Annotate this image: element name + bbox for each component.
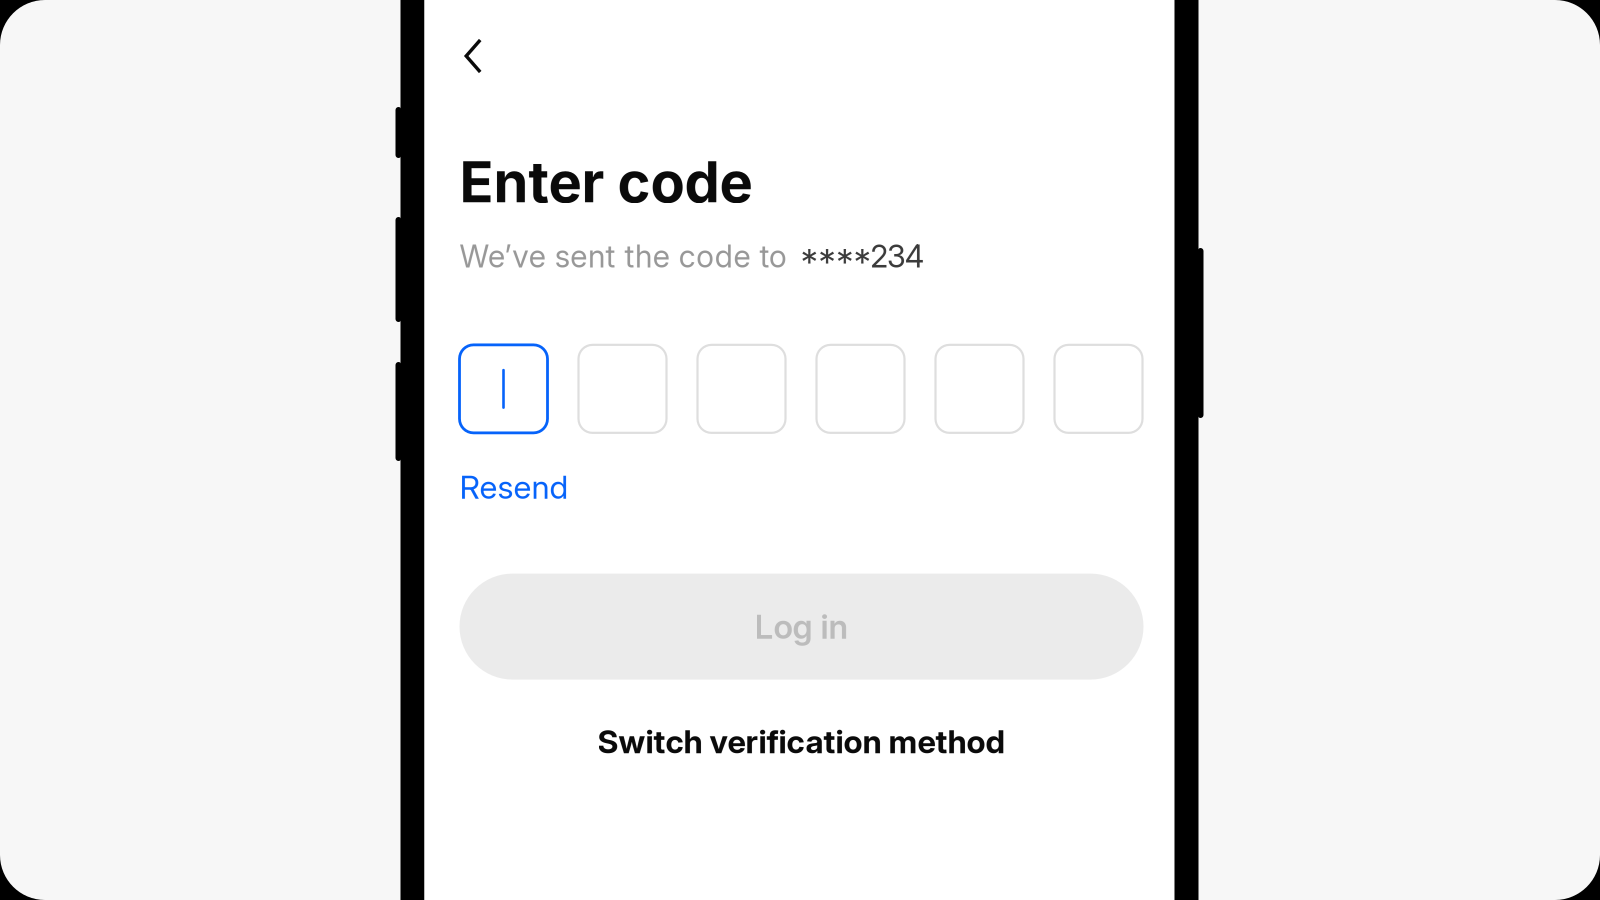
button[interactable]: Digit 5 xyxy=(935,345,1023,433)
button[interactable]: Back xyxy=(464,26,516,86)
staticText: Resend xyxy=(459,468,568,507)
button[interactable]: Digit 1 xyxy=(459,345,547,433)
button[interactable]: Log in xyxy=(459,574,1143,680)
staticText: ****234 xyxy=(799,238,924,275)
staticText: Switch verification method xyxy=(597,722,1005,761)
button[interactable]: Digit 2 xyxy=(578,345,666,433)
button[interactable]: Digit 4 xyxy=(816,345,904,433)
staticText: Log in xyxy=(754,606,848,647)
staticText: We’ve sent the code to xyxy=(459,238,787,275)
button[interactable]: Digit 3 xyxy=(697,345,785,433)
button[interactable]: Resend xyxy=(459,468,568,507)
button[interactable]: Switch verification method xyxy=(459,728,1143,756)
button[interactable]: Digit 6 xyxy=(1054,345,1142,433)
staticText: Enter code xyxy=(459,148,752,216)
